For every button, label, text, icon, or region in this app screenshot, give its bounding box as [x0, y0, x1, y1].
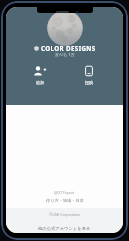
staticText: COLOR DESIGNS	[41, 44, 96, 52]
button[interactable]: 追加	[33, 65, 47, 85]
staticText: 他の公式アカウントを見る	[38, 226, 91, 231]
staticText: 追加	[36, 80, 44, 85]
staticText: ©LINE Corporation	[49, 212, 81, 217]
staticText: 作り方・地域・日本	[46, 198, 84, 203]
staticText: 友だち 1万	[55, 52, 75, 57]
staticText: 投稿	[85, 80, 93, 85]
button[interactable]: 投稿	[82, 65, 96, 85]
staticText: @077cpsvt	[54, 190, 75, 195]
button[interactable]: 他の公式アカウントを見る	[38, 226, 91, 231]
